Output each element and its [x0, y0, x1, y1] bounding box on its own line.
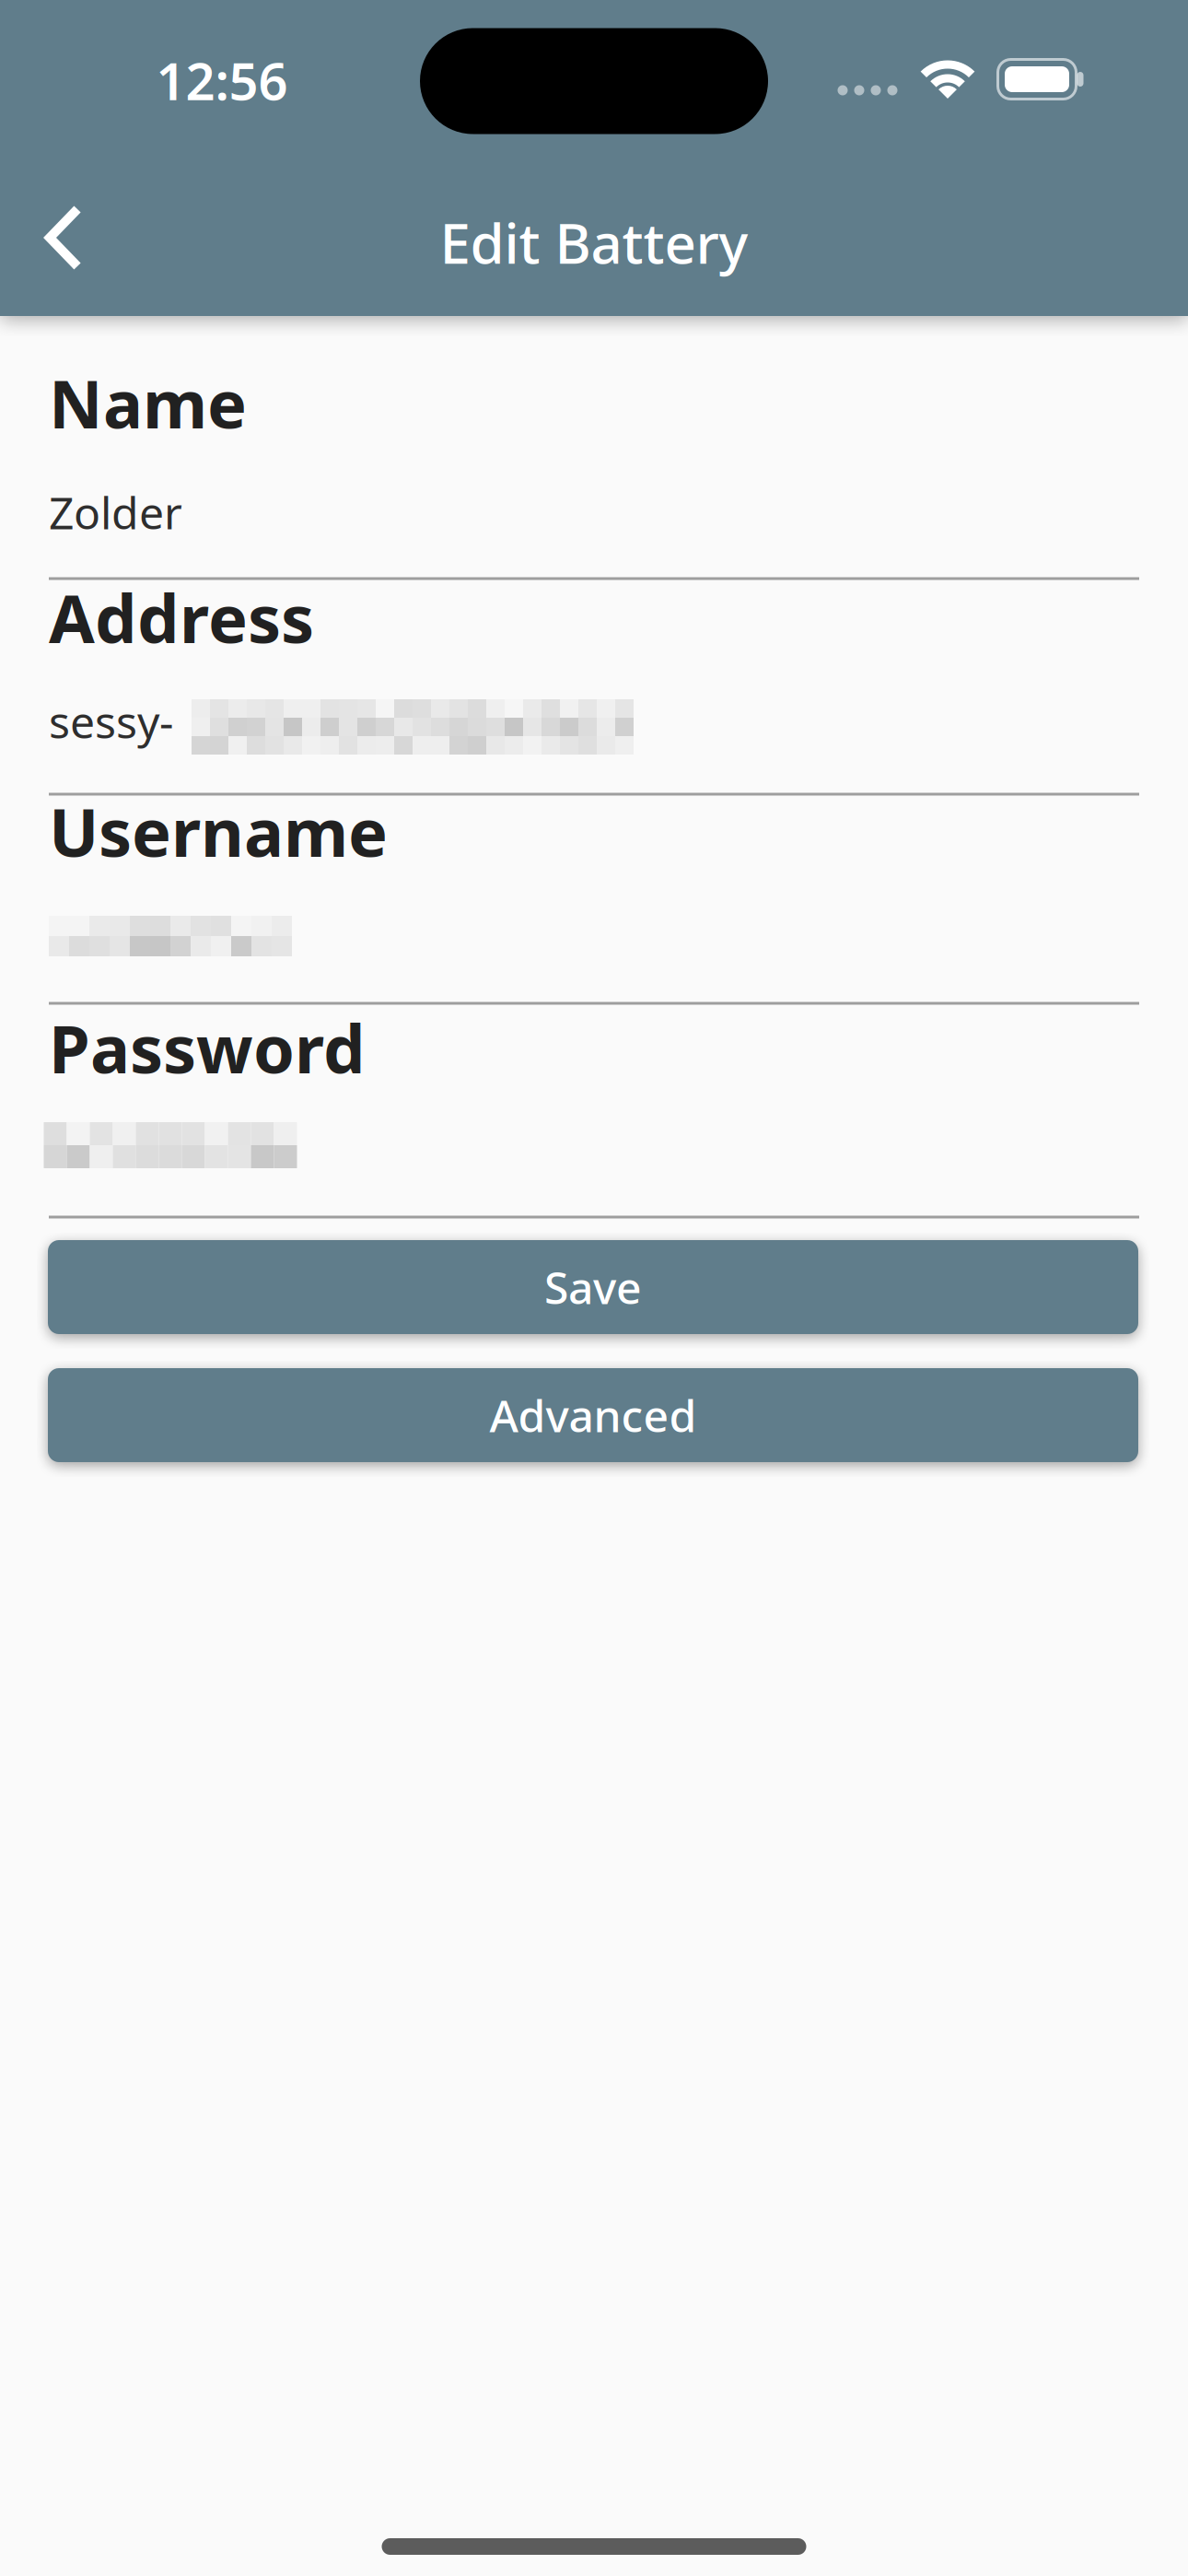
staticText: Address	[49, 573, 314, 661]
button[interactable]: Back	[28, 192, 101, 284]
staticText: sessy-	[49, 692, 173, 751]
staticText: Edit Battery	[440, 206, 748, 279]
staticText: 12:56	[156, 46, 288, 114]
staticText: Name	[49, 359, 247, 447]
button[interactable]: Advanced	[48, 1368, 1138, 1462]
staticText: Username	[49, 787, 388, 875]
staticText: Password	[49, 1003, 366, 1092]
staticText: Zolder	[49, 483, 182, 542]
button[interactable]: Save	[48, 1240, 1138, 1334]
staticText: Save	[544, 1258, 642, 1316]
staticText: Advanced	[489, 1386, 697, 1444]
